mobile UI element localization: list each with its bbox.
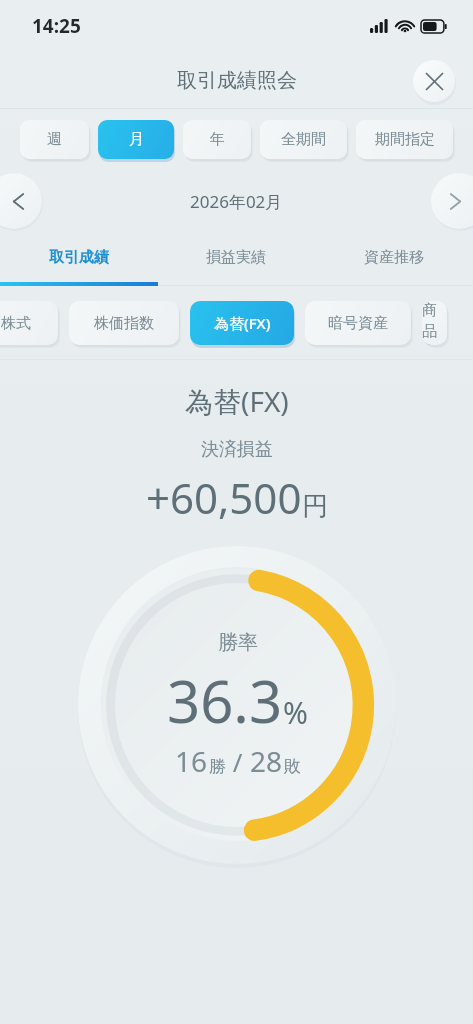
button[interactable]: 全期間 xyxy=(260,120,347,159)
staticText: 決済損益 xyxy=(201,438,273,461)
button[interactable]: 為替(FX) xyxy=(190,301,294,345)
staticText: 株式 xyxy=(1,314,31,333)
button[interactable]: 期間指定 xyxy=(356,120,453,159)
button[interactable]: 月 xyxy=(98,120,174,159)
staticText: 為替(FX) xyxy=(185,382,289,420)
staticText: 取引成績 xyxy=(49,248,109,267)
staticText: 株価指数 xyxy=(94,314,154,333)
staticText: 14:25 xyxy=(32,13,81,39)
staticText: 週 xyxy=(47,130,62,149)
button[interactable]: 株価指数 xyxy=(69,301,179,345)
button[interactable]: 次の月 xyxy=(431,173,473,229)
staticText: 取引成績照会 xyxy=(177,68,297,93)
button[interactable]: 年 xyxy=(183,120,251,159)
staticText: 商品資源 xyxy=(422,301,447,345)
button[interactable]: 週 xyxy=(20,120,89,159)
staticText: 敗 xyxy=(284,756,301,777)
staticText: 勝率 xyxy=(218,630,258,655)
staticText: 月 xyxy=(129,130,144,149)
staticText: 為替(FX) xyxy=(214,313,271,333)
staticText: +60,500 xyxy=(146,469,302,526)
button[interactable]: 取引成績 xyxy=(0,232,157,282)
staticText: 年 xyxy=(210,130,225,149)
staticText: 全期間 xyxy=(281,130,326,149)
staticText: / xyxy=(226,744,250,779)
staticText: 資産推移 xyxy=(364,248,424,267)
button[interactable]: 損益実績 xyxy=(157,232,315,282)
staticText: 36.3 xyxy=(167,661,283,740)
staticText: 円 xyxy=(302,490,328,523)
staticText: 2026年02月 xyxy=(190,190,283,213)
staticText: 勝 xyxy=(209,756,226,777)
button[interactable]: 暗号資産 xyxy=(305,301,411,345)
button[interactable]: 閉じる xyxy=(413,60,455,102)
button[interactable]: 前の月 xyxy=(0,173,42,229)
staticText: 暗号資産 xyxy=(328,314,388,333)
staticText: % xyxy=(283,692,308,733)
staticText: 28 xyxy=(250,742,283,780)
button[interactable]: 商品資源 xyxy=(422,301,447,345)
button[interactable]: 株式 xyxy=(0,301,58,345)
staticText: 16 xyxy=(175,742,208,780)
button[interactable]: 資産推移 xyxy=(315,232,473,282)
staticText: 期間指定 xyxy=(375,130,435,149)
staticText: 損益実績 xyxy=(206,248,266,267)
